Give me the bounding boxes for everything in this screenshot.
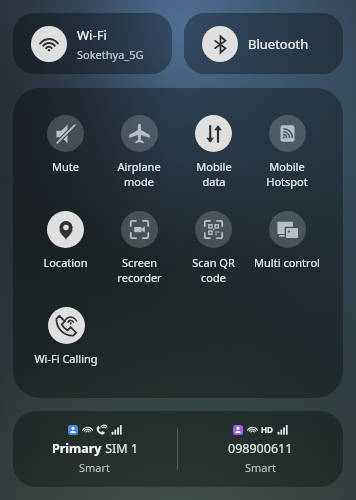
staticText: Mobile Hotspot: [266, 159, 308, 189]
button[interactable]: HD: [178, 424, 343, 475]
button[interactable]: Wi-Fi Calling: [34, 307, 98, 366]
staticText: Screen recorder: [117, 255, 162, 285]
staticText: SIM 1: [102, 440, 139, 457]
staticText: Airplane mode: [117, 159, 161, 189]
button[interactable]: Primary: [13, 424, 177, 475]
staticText: Wi-Fi Calling: [34, 351, 98, 366]
button[interactable]: Multi control: [254, 211, 320, 270]
button[interactable]: Bluetooth: [184, 13, 343, 74]
button[interactable]: Location: [43, 211, 88, 270]
staticText: 098900611: [228, 440, 293, 457]
staticText: Bluetooth: [248, 35, 309, 53]
button[interactable]: Wi-Fi: [13, 13, 172, 74]
button[interactable]: Mobile data: [195, 115, 232, 189]
staticText: Smart: [79, 460, 111, 475]
button[interactable]: Scan QR code: [192, 211, 235, 285]
staticText: Sokethya_5G: [77, 47, 144, 62]
staticText: Smart: [245, 460, 277, 475]
button[interactable]: Airplane mode: [117, 115, 161, 189]
button[interactable]: Mobile Hotspot: [266, 115, 308, 189]
staticText: Wi-Fi: [77, 26, 107, 44]
button[interactable]: Mute: [47, 115, 84, 174]
staticText: Scan QR code: [192, 255, 235, 285]
staticText: Location: [43, 255, 88, 270]
staticText: Multi control: [254, 255, 320, 270]
staticText: Mobile data: [196, 159, 232, 189]
staticText: Mute: [52, 159, 79, 174]
staticText: Primary: [52, 440, 102, 457]
button[interactable]: Screen recorder: [117, 211, 162, 285]
staticText: HD: [261, 424, 273, 435]
